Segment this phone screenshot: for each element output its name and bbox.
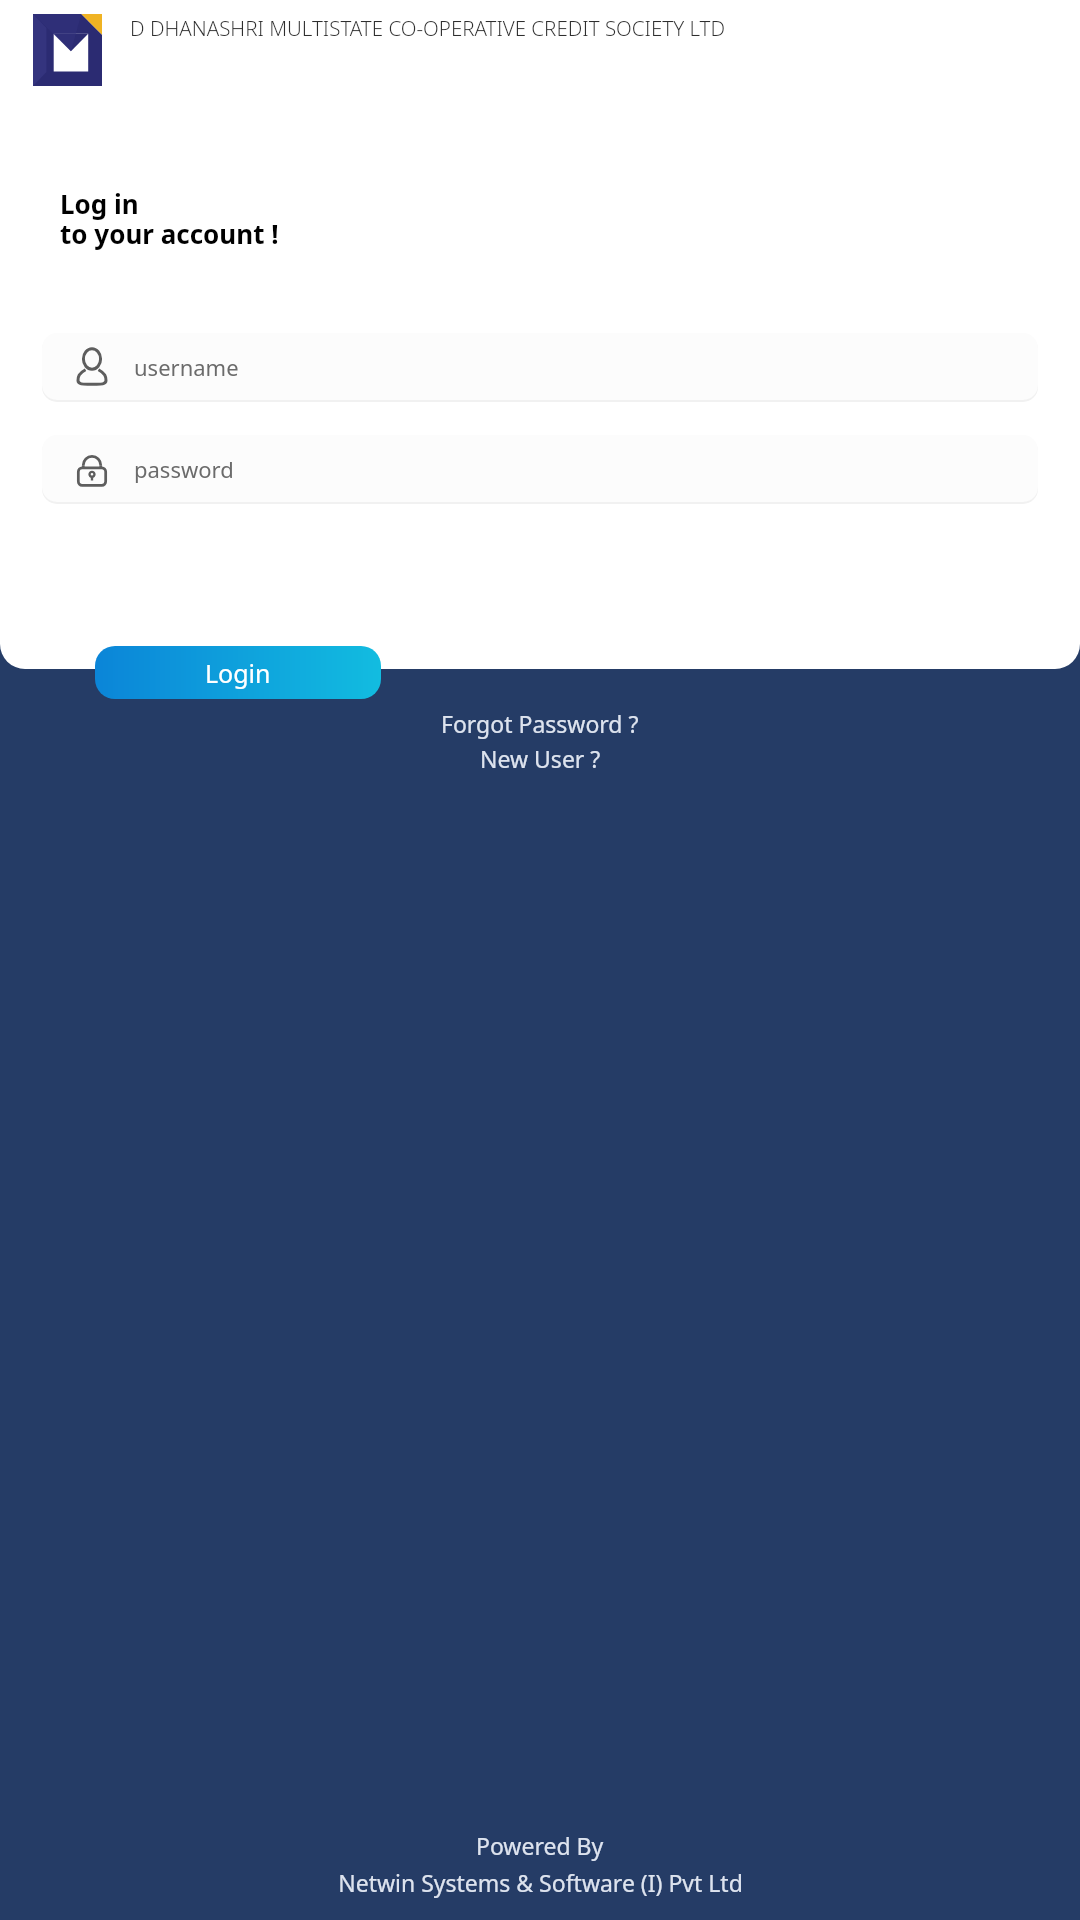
staticText: Netwin Systems & Software (I) Pvt Ltd [338, 1867, 743, 1898]
staticText: username [134, 352, 239, 382]
staticText: D DHANASHRI MULTISTATE CO-OPERATIVE CRED… [130, 14, 726, 42]
button[interactable]: Login [95, 646, 381, 699]
button[interactable]: username [42, 333, 1038, 400]
staticText: Log in to your account ! [60, 186, 279, 251]
button[interactable]: password [42, 435, 1038, 502]
button[interactable]: Forgot Password ? [431, 706, 649, 741]
button[interactable]: New User ? [470, 741, 611, 776]
staticText: New User ? [480, 743, 601, 774]
staticText: password [134, 454, 234, 484]
staticText: Forgot Password ? [441, 708, 639, 739]
staticText: Powered By [476, 1830, 604, 1861]
staticText: Login [205, 656, 271, 690]
